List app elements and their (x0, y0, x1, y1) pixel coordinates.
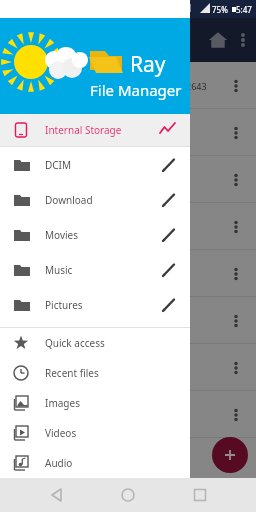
button[interactable]: Edit Pictures (160, 296, 178, 314)
staticText: Internal Storage (45, 123, 122, 137)
staticText: Images (45, 396, 80, 410)
button[interactable]: Item options (0, 109, 256, 156)
button[interactable]: Internal Storage (0, 114, 190, 146)
staticText: Quick access (45, 336, 105, 350)
staticText: 2643 (186, 80, 207, 92)
button[interactable]: Item options (228, 407, 244, 423)
button[interactable]: Edit DCIM (160, 156, 178, 174)
staticText: Documents (45, 486, 99, 500)
button[interactable]: Item options (228, 172, 244, 188)
staticText: Music (45, 263, 73, 277)
button[interactable]: Audio (0, 448, 190, 478)
staticText: Videos (45, 426, 77, 440)
staticText: 5:47 (236, 4, 252, 15)
button[interactable]: Item options (0, 438, 256, 485)
staticText: Ray (130, 50, 166, 79)
button[interactable]: Item options (228, 266, 244, 282)
button[interactable]: Item options (228, 125, 244, 141)
button[interactable]: Home (113, 480, 143, 510)
staticText: Pictures (45, 298, 83, 312)
button[interactable]: Item options (228, 360, 244, 376)
button[interactable]: Item options (0, 250, 256, 297)
staticText: File Manager (90, 80, 182, 100)
button[interactable]: Edit Download (160, 191, 178, 209)
button[interactable]: Movies (0, 217, 190, 252)
button[interactable]: Item options (228, 454, 244, 470)
button[interactable]: Item options (0, 344, 256, 391)
button[interactable]: Ray (0, 18, 190, 114)
button[interactable]: Music (0, 252, 190, 287)
button[interactable]: Recent files (0, 358, 190, 388)
button[interactable]: Videos (0, 418, 190, 448)
button[interactable]: Item options (0, 391, 256, 438)
staticText: Download (45, 193, 93, 207)
button[interactable]: Images (0, 388, 190, 418)
button[interactable]: Item options (0, 297, 256, 344)
button[interactable]: Item options (228, 313, 244, 329)
button[interactable]: Quick access (0, 328, 190, 358)
button[interactable]: Item options (228, 219, 244, 235)
button[interactable]: Back (42, 480, 72, 510)
button[interactable]: Recents (185, 480, 215, 510)
button[interactable]: Pictures (0, 287, 190, 322)
staticText: Recent files (45, 366, 99, 380)
button[interactable]: Edit Music (160, 261, 178, 279)
staticText: Audio (45, 456, 73, 470)
button[interactable]: 2643 (0, 62, 256, 109)
button[interactable]: Home (206, 28, 230, 52)
button[interactable]: Item options (228, 78, 244, 94)
staticText: 75% (212, 4, 228, 15)
button[interactable]: Documents (0, 478, 190, 508)
button[interactable]: Item options (0, 156, 256, 203)
staticText: Movies (45, 228, 79, 242)
button[interactable]: Item options (0, 203, 256, 250)
button[interactable]: More options (234, 31, 252, 49)
button[interactable]: Download (0, 182, 190, 217)
button[interactable]: DCIM (0, 147, 190, 182)
button[interactable]: Add (212, 437, 248, 473)
staticText: DCIM (45, 158, 72, 172)
button[interactable]: Edit Movies (160, 226, 178, 244)
